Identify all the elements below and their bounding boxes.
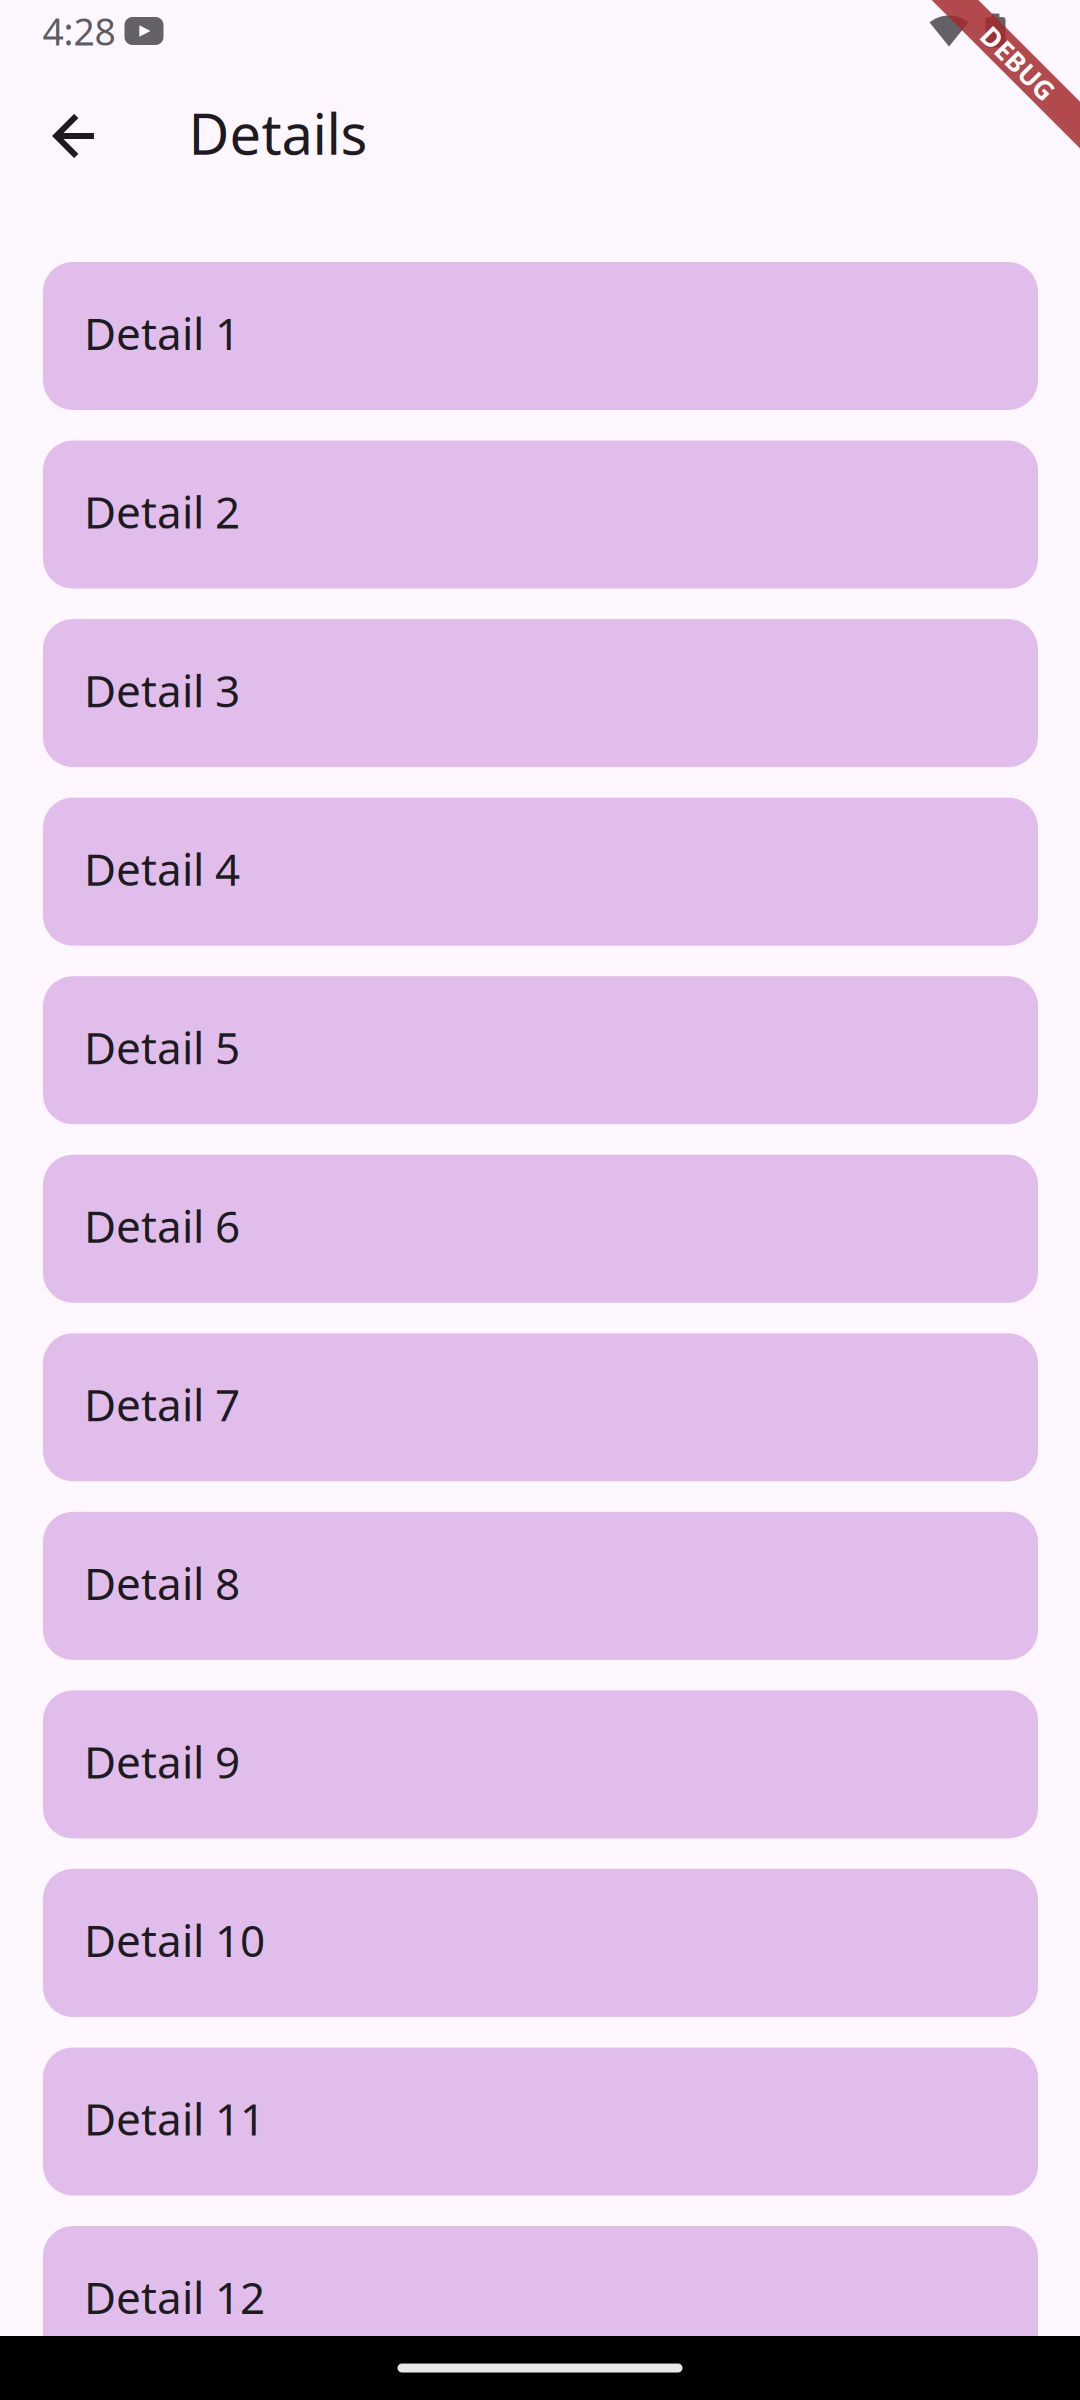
button[interactable]: Detail 2 — [43, 441, 1038, 589]
staticText: Detail 4 — [84, 839, 240, 899]
staticText: Detail 10 — [84, 1910, 265, 1970]
button[interactable]: Detail 11 — [43, 2047, 1038, 2195]
button[interactable]: Detail 4 — [43, 798, 1038, 946]
button[interactable]: Detail 7 — [43, 1333, 1038, 1481]
button[interactable]: Detail 3 — [43, 619, 1038, 767]
button[interactable]: Detail 8 — [43, 1512, 1038, 1660]
staticText: 4:28 — [42, 6, 115, 56]
staticText: Detail 3 — [84, 660, 240, 720]
staticText: Detail 2 — [84, 482, 240, 541]
button[interactable]: Detail 10 — [43, 1869, 1038, 2017]
staticText: Detail 11 — [84, 2088, 265, 2148]
button[interactable]: Detail 5 — [43, 976, 1038, 1124]
staticText: Detail 9 — [84, 1731, 240, 1791]
staticText: Detail 1 — [84, 303, 240, 363]
staticText: Detail 12 — [84, 2267, 265, 2327]
staticText: Detail 8 — [84, 1553, 240, 1613]
button[interactable]: Detail 1 — [43, 262, 1038, 410]
button[interactable]: Back — [28, 91, 118, 181]
staticText: Detail 6 — [84, 1196, 240, 1256]
staticText: Detail 7 — [84, 1374, 240, 1434]
button[interactable]: Detail 6 — [43, 1155, 1038, 1303]
staticText: DEBUG — [965, 60, 1057, 97]
staticText: Detail 5 — [84, 1017, 240, 1077]
button[interactable]: Detail 12 — [43, 2226, 1038, 2374]
staticText: Details — [188, 95, 367, 171]
button[interactable]: Detail 9 — [43, 1690, 1038, 1838]
